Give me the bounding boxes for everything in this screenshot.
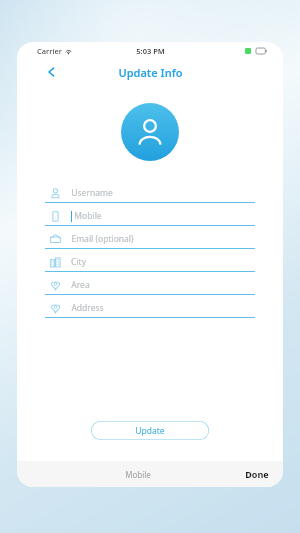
button[interactable]: Username [45, 184, 255, 207]
staticText: Mobile [125, 469, 151, 480]
button[interactable]: Address [45, 299, 255, 322]
staticText: Mobile [74, 210, 102, 222]
button[interactable]: Profile photo [121, 103, 179, 161]
staticText: Update Info [118, 65, 183, 80]
button[interactable]: Update [91, 421, 209, 440]
staticText: Update [135, 425, 165, 437]
staticText: City [71, 256, 86, 268]
button[interactable]: Back [41, 61, 63, 83]
staticText: Email (optional) [71, 233, 134, 245]
staticText: Done [245, 468, 269, 480]
button[interactable]: Done [231, 463, 283, 485]
button[interactable]: Mobile [45, 207, 255, 230]
staticText: Carrier [37, 46, 62, 56]
button[interactable]: City [45, 253, 255, 276]
staticText: Area [71, 279, 90, 291]
staticText: Username [71, 187, 113, 199]
button[interactable]: Area [45, 276, 255, 299]
button[interactable]: Mobile [121, 465, 155, 484]
staticText: Address [71, 302, 104, 314]
staticText: 5:03 PM [136, 46, 165, 56]
button[interactable]: Email (optional) [45, 230, 255, 253]
